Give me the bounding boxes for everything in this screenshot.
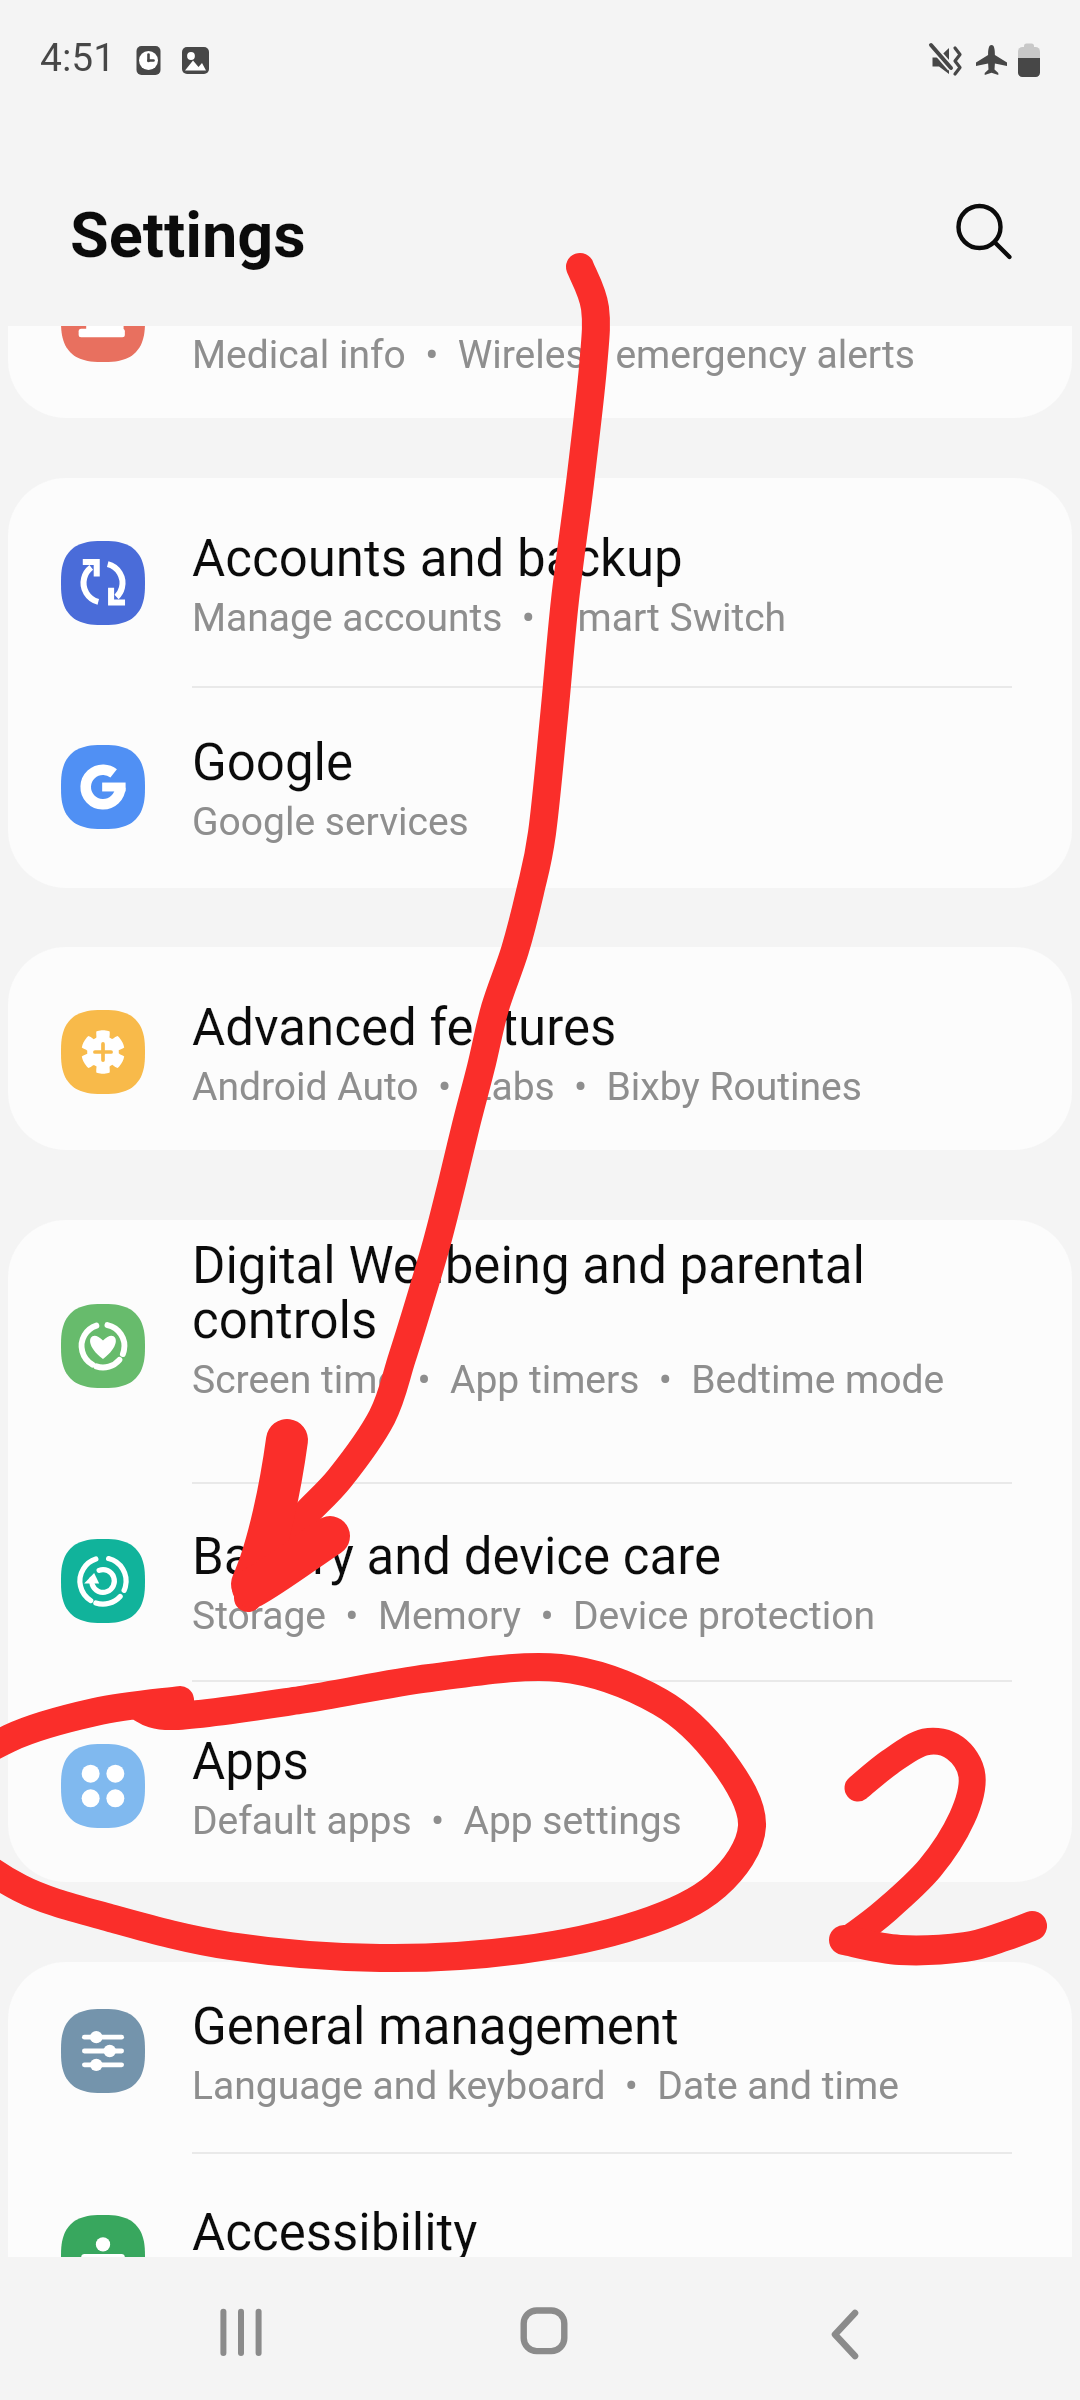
staticText: Accounts and backup bbox=[192, 529, 683, 589]
button[interactable]: Digital Wellbeing and parental bbox=[8, 1215, 1072, 1477]
staticText: Digital Wellbeing and parental bbox=[192, 1236, 865, 1296]
button[interactable]: Accessibility bbox=[8, 2154, 1072, 2257]
staticText: Screen time • App timers • Bedtime mode bbox=[192, 1357, 945, 1403]
button[interactable]: Accounts and backup bbox=[8, 480, 1072, 685]
staticText: Android Auto • Labs • Bixby Routines bbox=[192, 1064, 862, 1110]
staticText: Settings bbox=[70, 199, 306, 273]
button[interactable]: General management bbox=[8, 1948, 1072, 2153]
staticText: Google bbox=[192, 733, 353, 793]
staticText: Manage accounts • Smart Switch bbox=[192, 595, 787, 641]
staticText: Apps bbox=[192, 1732, 309, 1792]
staticText: 4:51 bbox=[40, 35, 116, 81]
button[interactable]: Home bbox=[454, 2257, 634, 2400]
staticText: Battery and device care bbox=[192, 1527, 722, 1587]
button[interactable]: Battery and device care bbox=[8, 1478, 1072, 1683]
staticText: General management bbox=[192, 1997, 679, 2057]
button[interactable]: Search bbox=[934, 182, 1025, 273]
staticText: Language and keyboard • Date and time bbox=[192, 2063, 899, 2109]
staticText: Storage • Memory • Device protection bbox=[192, 1593, 875, 1639]
button[interactable]: Safety and emergency bbox=[8, 326, 1072, 422]
staticText: controls bbox=[192, 1291, 378, 1351]
button[interactable]: Google bbox=[8, 684, 1072, 889]
staticText: Advanced features bbox=[192, 998, 617, 1058]
staticText: Accessibility bbox=[192, 2203, 478, 2257]
button[interactable]: Recents bbox=[151, 2257, 331, 2400]
staticText: Default apps • App settings bbox=[192, 1798, 682, 1844]
button[interactable]: Apps bbox=[8, 1683, 1072, 1888]
button[interactable]: Advanced features bbox=[8, 949, 1072, 1154]
staticText: Medical info • Wireless emergency alerts bbox=[192, 332, 915, 378]
button[interactable]: Back bbox=[755, 2257, 935, 2400]
staticText: Google services bbox=[192, 799, 469, 845]
